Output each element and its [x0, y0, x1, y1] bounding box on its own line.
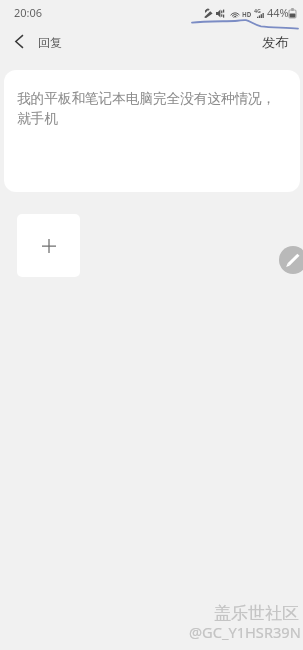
button[interactable]: Add image — [17, 214, 80, 277]
staticText: HD — [242, 10, 252, 18]
button[interactable]: Back — [4, 27, 33, 56]
button[interactable]: 我的平板和笔记本电脑完全没有这种情况，就手机 — [4, 70, 300, 192]
staticText: 4G — [254, 7, 261, 14]
button[interactable]: 回复 — [33, 31, 67, 54]
staticText: 回复 — [38, 35, 62, 50]
staticText: @GC_Y1HSR39N — [189, 622, 301, 642]
staticText: 20:06 — [14, 5, 43, 20]
button[interactable]: 发布 — [256, 30, 295, 55]
staticText: 44% — [267, 5, 289, 20]
staticText: 我的平板和笔记本电脑完全没有这种情况，就手机 — [17, 90, 282, 127]
staticText: 盖乐世社区 — [214, 603, 299, 624]
button[interactable]: Edit — [279, 246, 303, 274]
staticText: 发布 — [262, 34, 289, 51]
